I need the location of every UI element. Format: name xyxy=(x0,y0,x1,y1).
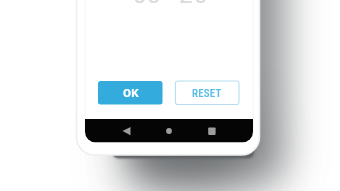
button[interactable]: RESET xyxy=(175,81,239,105)
staticText: OK xyxy=(123,86,139,100)
button[interactable]: OK xyxy=(98,81,163,105)
staticText: 00 xyxy=(133,0,162,9)
staticText: RESET xyxy=(192,87,222,100)
staticText: 20 xyxy=(179,0,210,9)
